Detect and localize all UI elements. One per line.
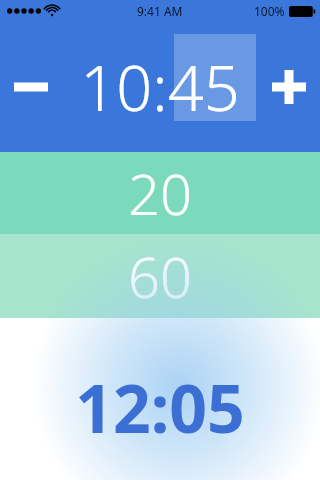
button[interactable]: 60	[0, 234, 320, 318]
button[interactable]: 12:05	[0, 318, 320, 480]
staticText: 10:45	[80, 44, 240, 130]
staticText: 12:05	[75, 362, 245, 452]
button[interactable]: 20	[0, 152, 320, 234]
staticText: 9:41 AM	[137, 3, 183, 19]
button[interactable]: Increase	[258, 22, 320, 152]
staticText: 20	[128, 155, 192, 231]
staticText: 100%	[254, 3, 285, 19]
staticText: 60	[128, 238, 192, 314]
button[interactable]: Decrease	[0, 22, 62, 152]
button[interactable]: 10:45	[62, 22, 258, 152]
